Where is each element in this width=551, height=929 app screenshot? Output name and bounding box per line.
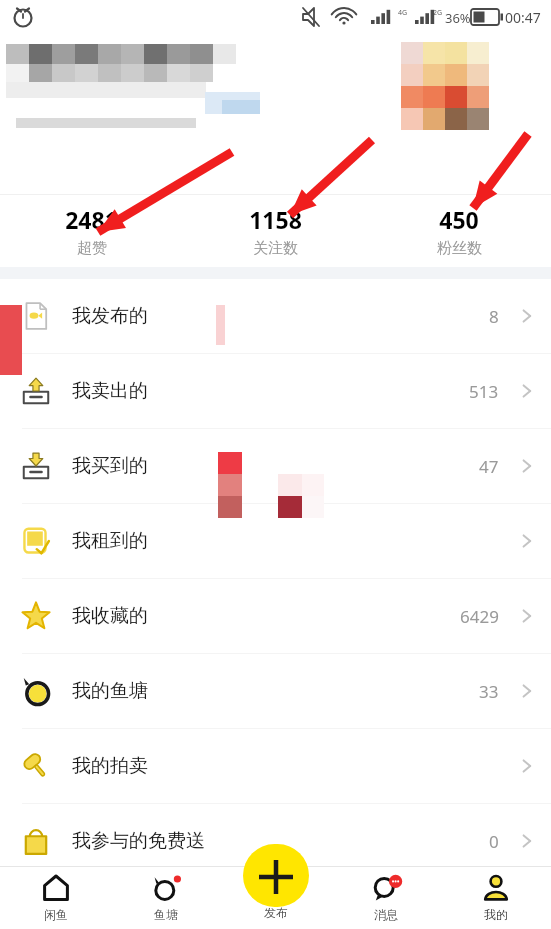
staticText: 粉丝数 [437,239,482,258]
staticText: 我参与的免费送 [72,829,205,853]
staticText: 513 [469,380,499,403]
staticText: 消息 [374,907,398,922]
staticText: 2G [433,8,443,18]
button[interactable]: 我的 [441,866,551,929]
staticText: 6429 [460,605,499,628]
staticText: 鱼塘 [154,907,178,922]
button[interactable]: 我收藏的 [0,579,551,653]
staticText: 关注数 [253,239,298,258]
staticText: 8 [489,305,499,328]
staticText: 33 [479,680,499,703]
button[interactable]: 1158 [183,195,367,267]
button[interactable]: 450 [367,195,551,267]
staticText: 我租到的 [72,529,148,553]
button[interactable]: 我租到的 [0,504,551,578]
staticText: 0 [489,830,499,853]
staticText: 闲鱼 [44,907,68,922]
button[interactable]: 我参与的免费送 [0,804,551,878]
staticText: 4G [398,8,408,18]
button[interactable]: 闲鱼 [0,866,111,929]
staticText: 我的 [484,907,508,922]
staticText: 47 [479,455,499,478]
staticText: 发布 [264,905,288,920]
button[interactable] [0,34,551,194]
staticText: 我的鱼塘 [72,679,148,703]
staticText: 我的拍卖 [72,754,148,778]
button[interactable]: 我发布的 [0,279,551,353]
staticText: 450 [439,204,479,235]
staticText: 超赞 [77,239,107,258]
button[interactable]: 发布 [243,844,309,907]
button[interactable]: 我卖出的 [0,354,551,428]
button[interactable]: 我的鱼塘 [0,654,551,728]
button[interactable]: 2481 [0,195,183,267]
staticText: 00:47 [505,8,541,27]
button[interactable]: 发布 [221,866,331,929]
staticText: 我发布的 [72,304,148,328]
button[interactable]: 我买到的 [0,429,551,503]
staticText: 2481 [65,204,118,235]
button[interactable]: 消息 [331,866,441,929]
staticText: 1158 [249,204,302,235]
staticText: 36% [445,9,471,27]
staticText: 我买到的 [72,454,148,478]
button[interactable]: 鱼塘 [111,866,221,929]
button[interactable]: 我的拍卖 [0,729,551,803]
staticText: 我卖出的 [72,379,148,403]
staticText: 我收藏的 [72,604,148,628]
